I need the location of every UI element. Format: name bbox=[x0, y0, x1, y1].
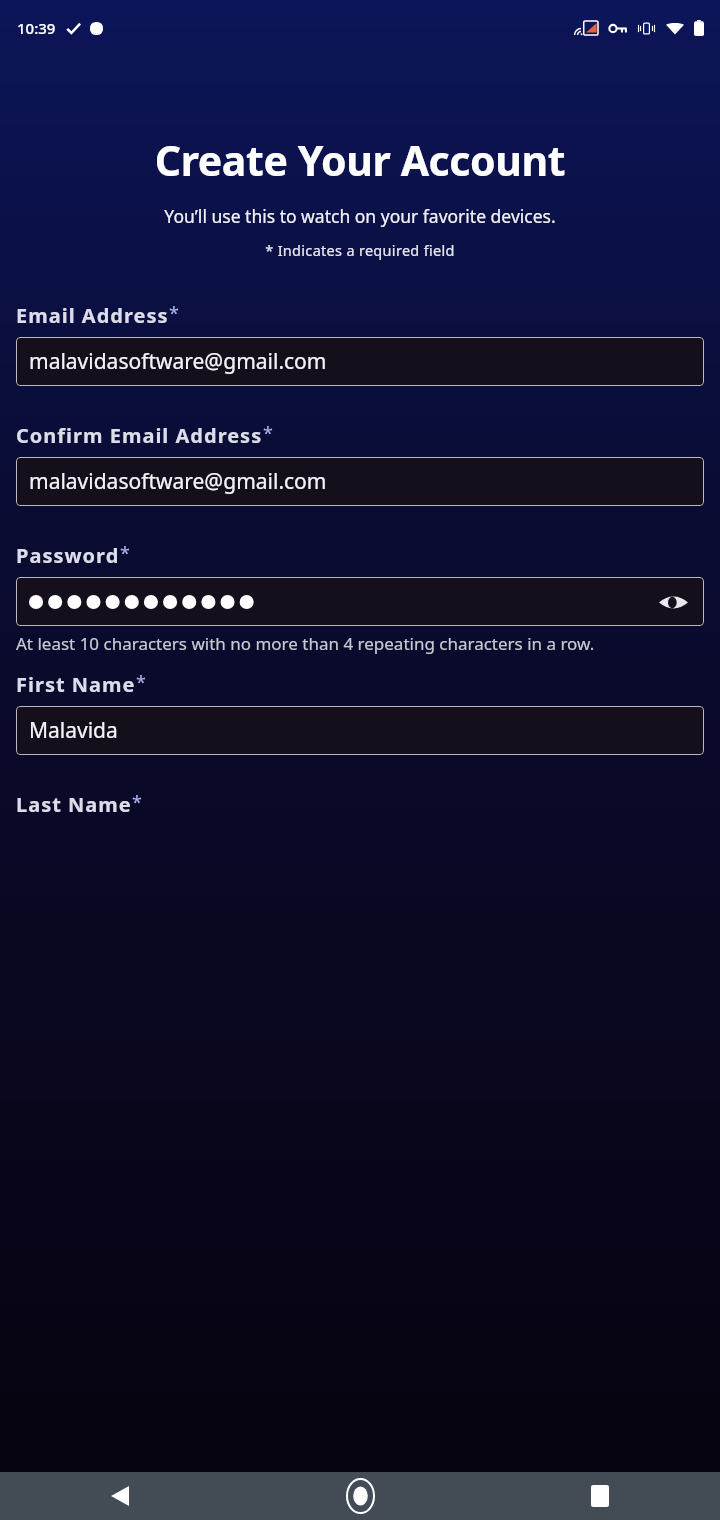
staticText: At least 10 characters with no more than… bbox=[16, 632, 704, 655]
staticText: * bbox=[263, 421, 273, 446]
staticText: malavidasoftware@gmail.com bbox=[29, 467, 327, 496]
staticText: First Name bbox=[16, 671, 136, 698]
button[interactable]: Show password bbox=[652, 581, 694, 623]
button[interactable]: malavidasoftware@gmail.com bbox=[16, 457, 704, 506]
staticText: * bbox=[169, 301, 179, 326]
staticText: Email Address bbox=[16, 302, 169, 329]
staticText: Malavida bbox=[29, 716, 118, 745]
staticText: * Indicates a required field bbox=[0, 240, 720, 260]
staticText: * bbox=[136, 670, 146, 695]
button[interactable]: malavidasoftware@gmail.com bbox=[16, 337, 704, 386]
button[interactable]: Show password bbox=[16, 577, 704, 626]
staticText: * bbox=[120, 541, 130, 566]
staticText: Create Your Account bbox=[12, 132, 708, 188]
button[interactable]: Malavida bbox=[16, 706, 704, 755]
staticText: Password bbox=[16, 542, 120, 569]
staticText: malavidasoftware@gmail.com bbox=[29, 347, 327, 376]
staticText: You’ll use this to watch on your favorit… bbox=[36, 204, 684, 228]
staticText: Last Name bbox=[16, 791, 132, 818]
button[interactable]: Recent apps bbox=[480, 1472, 720, 1520]
button[interactable]: Back bbox=[0, 1472, 240, 1520]
staticText: Confirm Email Address bbox=[16, 422, 263, 449]
staticText: * bbox=[132, 790, 142, 815]
staticText: 10:39 bbox=[17, 18, 56, 38]
button[interactable]: Home bbox=[240, 1472, 480, 1520]
